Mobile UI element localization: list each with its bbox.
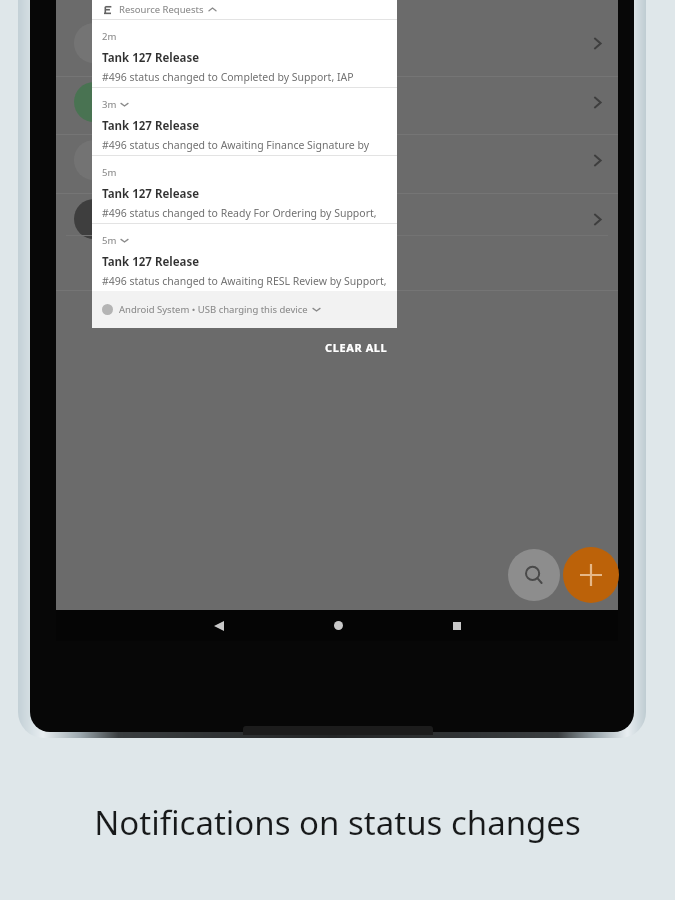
staticText: Android System • USB charging this devic… (119, 303, 308, 316)
staticText: Tank 127 Release (102, 50, 200, 66)
staticText: 5m (102, 234, 117, 247)
staticText: Tank 127 Release (102, 254, 200, 270)
staticText: #496 status changed to Awaiting RESL Rev… (102, 274, 389, 288)
button[interactable]: Back (201, 613, 237, 638)
button[interactable]: Android System • USB charging this devic… (92, 291, 397, 328)
staticText: Resource Requests (119, 3, 204, 16)
staticText: #496 status changed to Completed by Supp… (102, 70, 354, 84)
button[interactable]: 5m (92, 224, 397, 291)
staticText: 5m (102, 166, 117, 179)
staticText: Notifications on status changes (94, 800, 581, 845)
staticText: Tank 127 Release (102, 186, 200, 202)
button[interactable]: Open item (584, 206, 610, 232)
button[interactable]: Open item (584, 147, 610, 173)
button[interactable]: Open item (584, 89, 610, 115)
button[interactable]: Search (508, 549, 560, 601)
button[interactable]: 5m (92, 156, 397, 223)
staticText: 3m (102, 98, 117, 111)
button[interactable]: Add new request (563, 547, 619, 603)
button[interactable]: Resource Requests (92, 0, 397, 19)
button[interactable]: Open item (584, 30, 610, 56)
staticText: 2m (102, 30, 117, 43)
button[interactable]: 2m (92, 20, 397, 87)
button[interactable]: Home (320, 613, 356, 638)
staticText: #496 status changed to Awaiting Finance … (102, 138, 389, 152)
button[interactable]: CLEAR ALL (310, 336, 402, 358)
button[interactable]: 3m (92, 88, 397, 155)
staticText: Tank 127 Release (102, 118, 200, 134)
button[interactable]: Recent apps (439, 613, 475, 638)
staticText: #496 status changed to Ready For Orderin… (102, 206, 389, 220)
staticText: CLEAR ALL (325, 340, 388, 355)
